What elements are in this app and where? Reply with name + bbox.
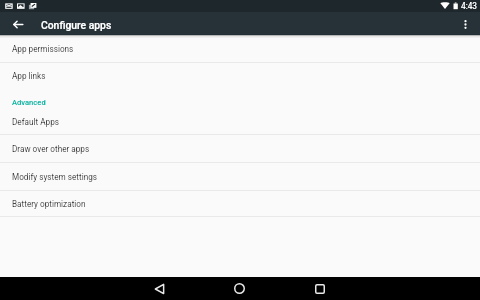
staticText: Battery optimization	[12, 199, 86, 209]
button[interactable]: Battery optimization	[0, 191, 480, 216]
button[interactable]: App links	[0, 63, 480, 89]
staticText: App links	[12, 71, 46, 81]
button[interactable]: Recent apps	[280, 277, 360, 300]
staticText: 4:43	[461, 1, 477, 11]
staticText: Advanced	[12, 98, 46, 107]
button[interactable]: Modify system settings	[0, 163, 480, 190]
staticText: Default Apps	[12, 117, 59, 127]
button[interactable]: More options	[453, 12, 477, 35]
button[interactable]: Home	[199, 277, 280, 300]
button[interactable]: Back	[119, 277, 199, 300]
button[interactable]: Default Apps	[0, 110, 480, 134]
staticText: Draw over other apps	[12, 144, 90, 154]
button[interactable]: Navigate up	[5, 12, 31, 35]
staticText: Configure apps	[41, 19, 112, 31]
staticText: Modify system settings	[12, 172, 97, 182]
staticText: App permissions	[12, 44, 74, 54]
button[interactable]: Draw over other apps	[0, 135, 480, 162]
button[interactable]: App permissions	[0, 35, 480, 62]
